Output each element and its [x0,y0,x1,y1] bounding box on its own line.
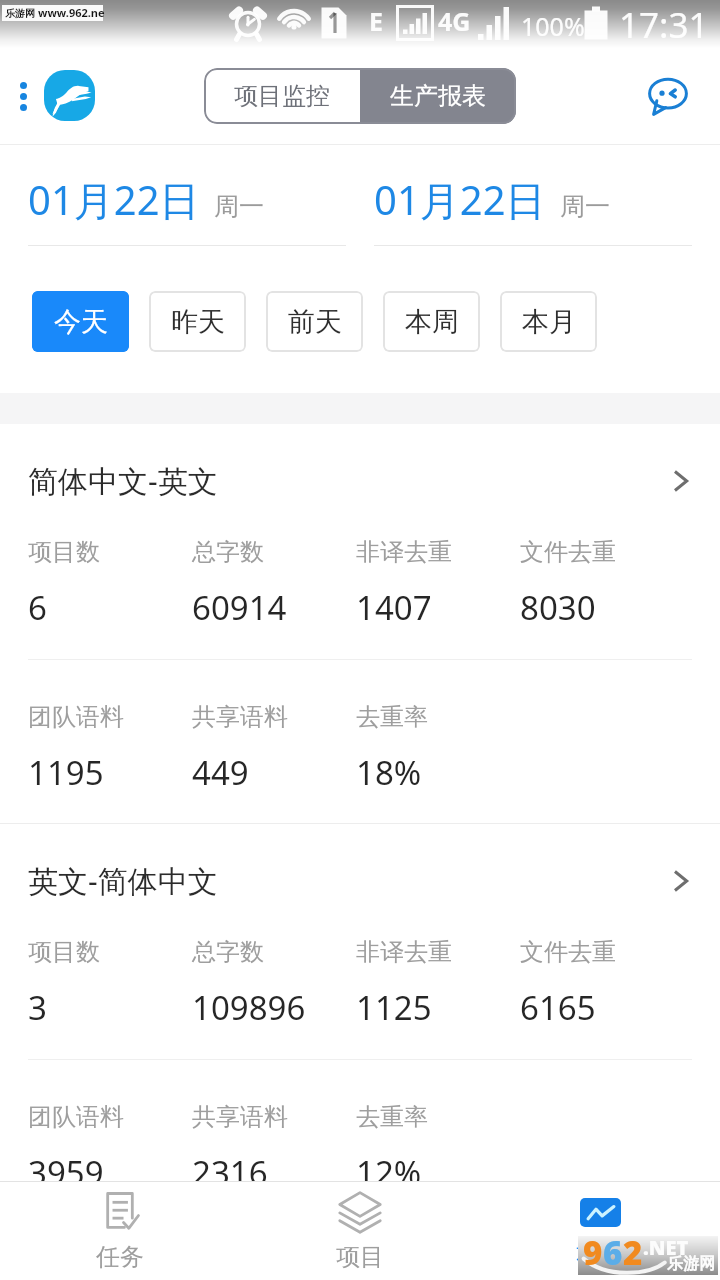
staticText: 周一 [560,191,610,222]
staticText: 01月22日 [374,172,546,227]
staticText: 2316 [192,1150,268,1195]
staticText: 6 [28,585,47,630]
staticText: 总字数 [192,537,264,567]
staticText: 本周 [405,305,459,339]
staticText: 非译去重 [356,537,452,567]
staticText: 共享语料 [192,702,288,732]
button[interactable]: 英文-简体中文 [0,824,720,1223]
button[interactable]: 前天 [266,291,363,352]
staticText: 100% [521,9,585,43]
button[interactable]: 项目监控 [204,68,360,124]
staticText: 简体中文-英文 [28,460,218,501]
button[interactable]: App logo [44,70,95,121]
staticText: 17:31 [619,1,709,49]
button[interactable]: 本周 [383,291,480,352]
button[interactable]: Projects [240,1182,480,1280]
staticText: 运营 [576,1235,624,1265]
staticText: 周一 [214,191,264,222]
staticText: 今天 [54,305,108,339]
staticText: 总字数 [192,937,264,967]
staticText: 1407 [356,585,432,630]
staticText: 109896 [192,985,306,1030]
staticText: 乐游网 [667,1254,715,1274]
staticText: 去重率 [356,702,428,732]
staticText: 昨天 [171,305,225,339]
button[interactable]: More options [20,82,27,111]
staticText: 6 [603,1230,623,1269]
staticText: 60914 [192,585,287,630]
staticText: www.962.net [38,5,106,21]
staticText: 本月 [522,305,576,339]
staticText: 3 [28,985,47,1030]
staticText: .NET [643,1234,689,1261]
staticText: 团队语料 [28,702,124,732]
staticText: 英文-简体中文 [28,860,218,901]
staticText: 任务 [96,1242,144,1272]
button[interactable]: 01月22日 [0,145,360,247]
staticText: 前天 [288,305,342,339]
staticText: E [369,4,384,38]
staticText: 生产报表 [390,81,486,111]
button[interactable]: 本月 [500,291,597,352]
staticText: 1195 [28,750,104,795]
staticText: 项目 [336,1242,384,1272]
staticText: 乐游网 [5,7,35,20]
button[interactable]: 简体中文-英文 [0,424,720,823]
staticText: 4G [438,4,471,38]
staticText: 文件去重 [520,937,616,967]
staticText: 3959 [28,1150,104,1195]
staticText: 项目数 [28,937,100,967]
staticText: 2 [623,1230,643,1269]
staticText: 1125 [356,985,432,1030]
staticText: 449 [192,750,249,795]
button[interactable]: Tasks [0,1182,240,1280]
button[interactable]: Messages [646,74,690,118]
staticText: 6165 [520,985,596,1030]
staticText: 12% [356,1150,422,1195]
staticText: 项目数 [28,537,100,567]
button[interactable]: 生产报表 [360,68,516,124]
staticText: 非译去重 [356,937,452,967]
staticText: 文件去重 [520,537,616,567]
staticText: 8030 [520,585,596,630]
staticText: 18% [356,750,422,795]
staticText: 团队语料 [28,1102,124,1132]
button[interactable]: 今天 [32,291,129,352]
button[interactable]: 昨天 [149,291,246,352]
staticText: 去重率 [356,1102,428,1132]
staticText: 项目监控 [234,81,330,111]
staticText: 01月22日 [28,172,200,227]
button[interactable]: 01月22日 [360,145,720,247]
staticText: 共享语料 [192,1102,288,1132]
button[interactable]: Reports [480,1182,720,1280]
staticText: 9 [583,1230,603,1269]
